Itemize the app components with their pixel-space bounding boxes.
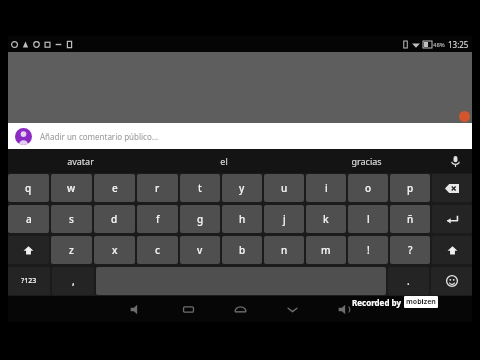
button[interactable]: m xyxy=(306,236,346,264)
staticText: z xyxy=(69,243,74,257)
button[interactable]: g xyxy=(180,205,220,233)
staticText: m xyxy=(321,243,331,257)
button[interactable]: c xyxy=(137,236,178,264)
button[interactable]: t xyxy=(180,174,220,202)
button[interactable]: s xyxy=(51,205,92,233)
button[interactable]: , xyxy=(52,267,94,295)
button[interactable]: w xyxy=(51,174,92,202)
staticText: w xyxy=(67,181,76,195)
staticText: Añadir un comentario público... xyxy=(40,131,159,142)
button[interactable]: e xyxy=(94,174,135,202)
staticText: ñ xyxy=(407,212,414,226)
staticText: el xyxy=(220,155,228,167)
button[interactable]: del xyxy=(432,174,472,202)
button[interactable]: Badge xyxy=(459,111,470,122)
button[interactable]: q xyxy=(8,174,49,202)
staticText: u xyxy=(281,181,288,195)
button[interactable]: emoji xyxy=(431,267,472,295)
staticText: c xyxy=(155,243,160,257)
button[interactable]: z xyxy=(51,236,92,264)
staticText: b xyxy=(239,243,246,257)
staticText: 48% xyxy=(433,41,445,49)
staticText: ! xyxy=(367,243,370,257)
button[interactable]: ?123 xyxy=(8,267,50,295)
staticText: 13:25 xyxy=(448,39,469,50)
button[interactable]: j xyxy=(264,205,304,233)
button[interactable]: f xyxy=(137,205,178,233)
button[interactable]: x xyxy=(94,236,135,264)
staticText: , xyxy=(72,274,75,288)
button[interactable]: gracias xyxy=(295,149,438,173)
staticText: avatar xyxy=(67,155,94,167)
button[interactable]: k xyxy=(306,205,346,233)
staticText: . xyxy=(407,274,410,288)
staticText: f xyxy=(156,212,160,226)
staticText: x xyxy=(112,243,118,257)
button[interactable]: Volume down xyxy=(110,296,162,322)
button[interactable]: ? xyxy=(390,236,430,264)
button[interactable]: Back xyxy=(266,296,318,322)
staticText: s xyxy=(69,212,74,226)
staticText: n xyxy=(281,243,288,257)
staticText: l xyxy=(367,212,370,226)
button[interactable]: Volume up xyxy=(318,296,370,322)
staticText: e xyxy=(112,181,118,195)
staticText: ?123 xyxy=(21,276,37,286)
staticText: v xyxy=(197,243,203,257)
button[interactable]: r xyxy=(137,174,178,202)
button[interactable]: u xyxy=(264,174,304,202)
button[interactable]: ñ xyxy=(390,205,430,233)
staticText: i xyxy=(325,181,328,195)
button[interactable]: avatar xyxy=(8,149,152,173)
staticText: g xyxy=(197,212,204,226)
button[interactable]: . xyxy=(388,267,429,295)
button[interactable]: h xyxy=(222,205,262,233)
button[interactable]: Home xyxy=(214,296,266,322)
button[interactable]: el xyxy=(152,149,295,173)
button[interactable]: a xyxy=(8,205,49,233)
staticText: gracias xyxy=(351,155,382,167)
staticText: y xyxy=(239,181,245,195)
staticText: a xyxy=(26,212,32,226)
button[interactable]: shift xyxy=(432,236,472,264)
staticText: mobizen xyxy=(406,297,436,307)
button[interactable]: ! xyxy=(348,236,388,264)
button[interactable]: l xyxy=(348,205,388,233)
staticText: d xyxy=(111,212,118,226)
staticText: ? xyxy=(408,243,413,257)
staticText: k xyxy=(323,212,329,226)
staticText: o xyxy=(365,181,372,195)
button[interactable]: p xyxy=(390,174,430,202)
staticText: p xyxy=(407,181,414,195)
button[interactable]: n xyxy=(264,236,304,264)
button[interactable]: o xyxy=(348,174,388,202)
staticText: Recorded by xyxy=(352,297,401,308)
button[interactable]: Añadir un comentario público... xyxy=(8,123,472,149)
staticText: h xyxy=(239,212,246,226)
button[interactable]: i xyxy=(306,174,346,202)
staticText: q xyxy=(25,181,32,195)
button[interactable]: shift xyxy=(8,236,49,264)
button[interactable]: Voice input xyxy=(438,149,472,173)
staticText: r xyxy=(155,181,160,195)
button[interactable]: Recents xyxy=(162,296,214,322)
button[interactable]: enter xyxy=(432,205,472,233)
button[interactable]: y xyxy=(222,174,262,202)
staticText: t xyxy=(198,181,202,195)
button[interactable]: d xyxy=(94,205,135,233)
button[interactable]: v xyxy=(180,236,220,264)
button[interactable]: b xyxy=(222,236,262,264)
staticText: j xyxy=(283,212,286,226)
